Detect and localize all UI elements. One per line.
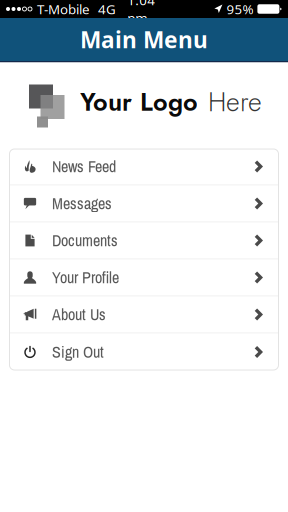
staticText: Main Menu <box>80 24 208 54</box>
staticText: Your Profile <box>52 267 119 288</box>
staticText: Documents <box>52 230 118 251</box>
staticText: 1:04 pm <box>127 0 155 27</box>
staticText: Sign Out <box>52 341 104 363</box>
button[interactable]: Messages <box>9 185 279 222</box>
staticText: 4G <box>98 0 116 18</box>
staticText: Here <box>208 83 262 121</box>
button[interactable]: About Us <box>9 296 279 333</box>
button[interactable]: Your Profile <box>9 259 279 296</box>
staticText: About Us <box>52 304 106 325</box>
staticText: 95% <box>226 0 253 18</box>
button[interactable]: News Feed <box>9 148 279 185</box>
staticText: Messages <box>52 193 112 214</box>
button[interactable]: Documents <box>9 222 279 259</box>
staticText: News Feed <box>52 156 116 177</box>
staticText: T-Mobile <box>37 0 90 18</box>
staticText: Your Logo <box>80 84 198 120</box>
button[interactable]: Sign Out <box>9 333 279 370</box>
